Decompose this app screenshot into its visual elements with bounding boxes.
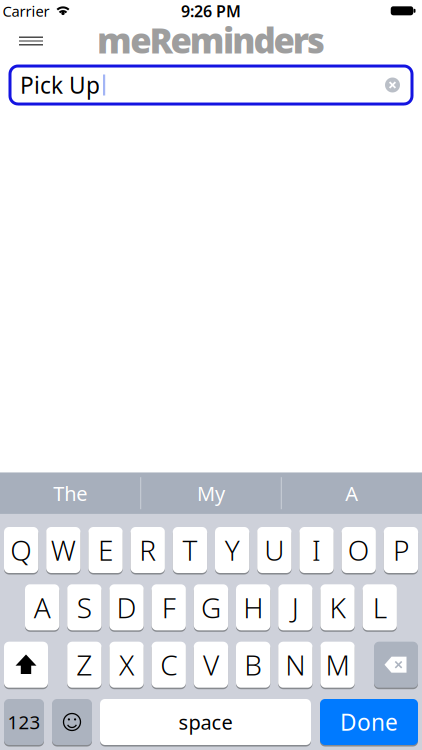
staticText: I	[312, 531, 321, 569]
button[interactable]: K	[320, 584, 355, 630]
button[interactable]: V	[194, 642, 228, 688]
button[interactable]: B	[236, 642, 270, 688]
button[interactable]	[374, 642, 418, 688]
staticText: F	[162, 589, 176, 626]
staticText: O	[348, 531, 370, 569]
staticText: Q	[10, 531, 32, 569]
button[interactable]: P	[384, 527, 418, 573]
staticText: L	[373, 589, 387, 626]
staticText: Z	[76, 646, 92, 683]
button[interactable]: U	[257, 527, 291, 573]
staticText: A	[345, 480, 358, 506]
button[interactable]: My	[142, 472, 280, 514]
staticText: C	[160, 646, 177, 683]
staticText: 9:26 PM	[181, 0, 241, 22]
staticText: S	[77, 589, 92, 626]
button[interactable]: E	[88, 527, 123, 573]
button[interactable]: W	[46, 527, 80, 573]
button[interactable]: Pick Up	[10, 66, 412, 104]
staticText: J	[292, 589, 299, 626]
staticText: B	[244, 646, 262, 683]
button[interactable]: J	[278, 584, 312, 630]
button[interactable]	[13, 26, 49, 56]
button[interactable]: S	[67, 584, 101, 630]
staticText: meReminders	[97, 17, 325, 63]
button[interactable]: A	[283, 472, 421, 514]
button[interactable]: A	[25, 584, 59, 630]
button[interactable]: X	[109, 642, 144, 688]
button[interactable]	[4, 642, 48, 688]
button[interactable]: M	[320, 642, 355, 688]
button[interactable]: G	[194, 584, 228, 630]
staticText: T	[182, 531, 197, 569]
staticText: V	[203, 646, 219, 683]
staticText: M	[326, 646, 350, 683]
staticText: U	[264, 531, 284, 569]
staticText: A	[34, 589, 51, 626]
staticText: My	[197, 480, 225, 506]
button[interactable]: C	[152, 642, 186, 688]
button[interactable]: N	[278, 642, 312, 688]
staticText: R	[139, 531, 156, 569]
staticText: D	[117, 589, 137, 626]
button[interactable]: L	[363, 584, 397, 630]
staticText: Pick Up	[20, 70, 100, 100]
button[interactable]: Q	[4, 527, 38, 573]
button[interactable]: The	[1, 472, 139, 514]
button[interactable]: H	[236, 584, 270, 630]
staticText: space	[178, 709, 232, 735]
button[interactable]: Done	[320, 699, 418, 745]
button[interactable]	[381, 74, 403, 96]
button[interactable]: I	[299, 527, 334, 573]
staticText: W	[51, 531, 76, 569]
button[interactable]: D	[109, 584, 144, 630]
button[interactable]	[52, 699, 92, 745]
button[interactable]: F	[152, 584, 186, 630]
staticText: H	[243, 589, 263, 626]
staticText: N	[285, 646, 305, 683]
staticText: K	[330, 589, 346, 626]
button[interactable]: Y	[215, 527, 249, 573]
staticText: G	[201, 589, 221, 626]
staticText: X	[119, 646, 134, 683]
button[interactable]: Z	[67, 642, 101, 688]
staticText: Y	[225, 531, 240, 569]
staticText: 123	[7, 710, 40, 734]
staticText: Carrier	[2, 1, 49, 21]
staticText: E	[98, 531, 113, 569]
staticText: The	[53, 480, 87, 506]
staticText: P	[393, 531, 409, 569]
staticText: Done	[340, 707, 398, 737]
button[interactable]: R	[131, 527, 165, 573]
button[interactable]: 123	[4, 699, 44, 745]
button[interactable]: space	[100, 699, 311, 745]
button[interactable]: O	[342, 527, 376, 573]
button[interactable]: T	[173, 527, 207, 573]
